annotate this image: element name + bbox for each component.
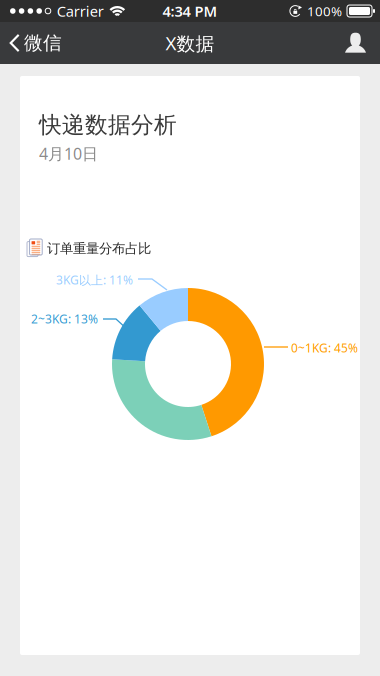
- staticText: 微信: [24, 31, 62, 54]
- staticText: Carrier: [57, 1, 104, 21]
- button[interactable]: 微信: [0, 25, 72, 60]
- button[interactable]: Profile: [333, 26, 380, 59]
- staticText: 快递数据分析: [39, 111, 177, 139]
- staticText: 2~3KG: 13%: [31, 311, 98, 327]
- staticText: 4月10日: [39, 143, 98, 164]
- staticText: X数据: [165, 31, 214, 55]
- staticText: 订单重量分布占比: [47, 240, 151, 257]
- staticText: 3KG以上: 11%: [56, 272, 133, 288]
- staticText: 100%: [307, 2, 342, 20]
- staticText: 4:34 PM: [162, 1, 217, 21]
- staticText: 0~1KG: 45%: [291, 340, 358, 356]
